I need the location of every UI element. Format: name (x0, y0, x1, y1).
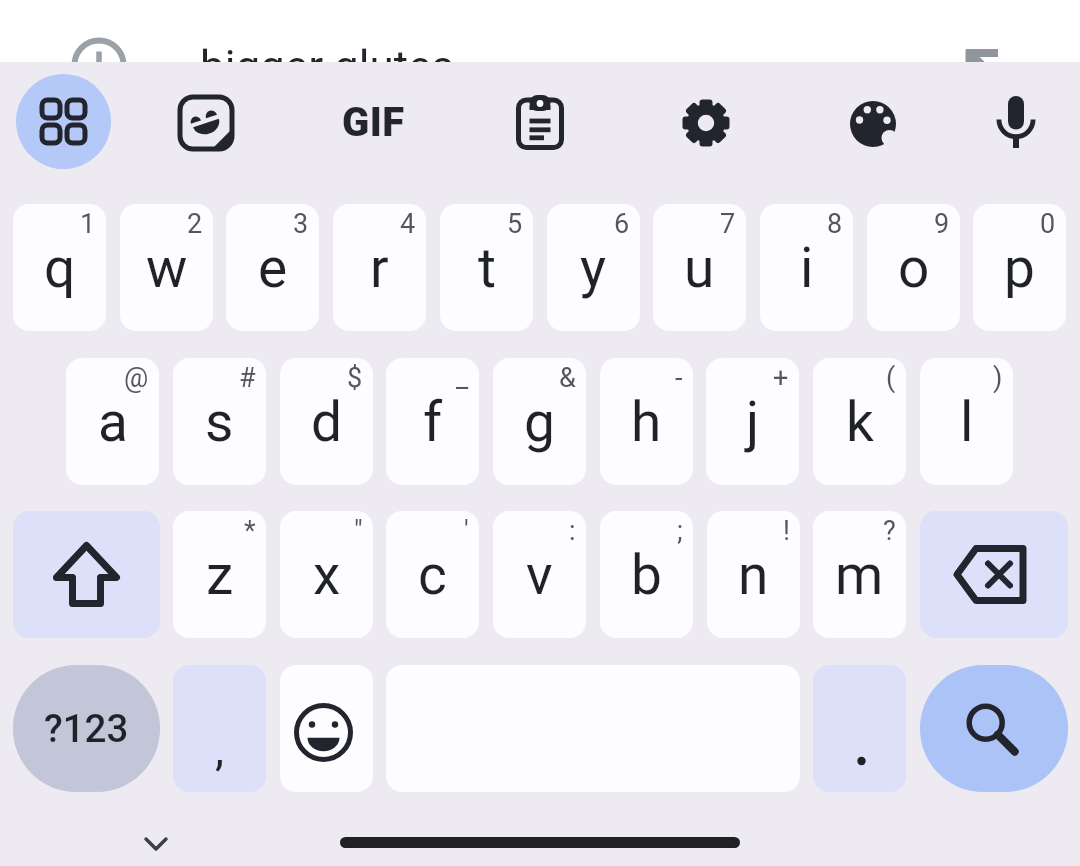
staticText: 1 (80, 208, 96, 240)
button[interactable]: bigger glutes (0, 0, 1080, 62)
button[interactable] (170, 87, 242, 159)
button[interactable]: e (226, 204, 319, 331)
button[interactable] (280, 665, 373, 792)
staticText: h (631, 390, 662, 454)
button[interactable] (813, 665, 906, 792)
button[interactable] (837, 88, 909, 160)
button[interactable]: n (707, 511, 800, 638)
staticText: y (580, 236, 607, 300)
staticText: @ (124, 362, 149, 394)
staticText: i (800, 236, 814, 300)
staticText: o (898, 236, 930, 300)
button[interactable]: t (440, 204, 533, 331)
button[interactable]: m (813, 511, 906, 638)
button[interactable]: v (493, 511, 586, 638)
button[interactable]: GIF (337, 86, 409, 158)
staticText: : (569, 515, 576, 547)
staticText: 6 (614, 208, 630, 240)
button[interactable]: ?123 (13, 665, 160, 792)
staticText: ( (886, 362, 896, 394)
staticText: m (835, 543, 884, 607)
staticText: 3 (293, 208, 309, 240)
staticText: * (244, 515, 256, 547)
staticText: _ (456, 362, 469, 394)
button[interactable]: w (120, 204, 213, 331)
button[interactable]: q (13, 204, 106, 331)
staticText: p (1004, 236, 1035, 300)
staticText: r (370, 236, 389, 300)
button[interactable]: y (547, 204, 640, 331)
button[interactable] (504, 88, 576, 160)
staticText: b (631, 543, 662, 607)
staticText: w (146, 236, 188, 300)
button[interactable] (980, 86, 1052, 158)
staticText: + (773, 362, 789, 394)
staticText: 5 (507, 208, 523, 240)
staticText: t (478, 236, 496, 300)
staticText: q (44, 236, 76, 300)
button[interactable]: c (386, 511, 479, 638)
staticText: GIF (342, 99, 405, 146)
staticText: 9 (934, 208, 950, 240)
staticText: e (258, 236, 288, 300)
staticText: x (313, 543, 341, 607)
button[interactable]: i (760, 204, 853, 331)
button[interactable]: s (173, 358, 266, 485)
staticText: l (960, 390, 974, 454)
staticText: bigger glutes (200, 41, 455, 62)
staticText: " (354, 515, 363, 547)
staticText: f (423, 390, 443, 454)
staticText: g (524, 390, 555, 454)
staticText: ! (783, 515, 790, 547)
button[interactable] (16, 74, 111, 169)
staticText: 2 (187, 208, 203, 240)
staticText: v (526, 543, 553, 607)
staticText: 0 (1040, 208, 1056, 240)
button[interactable] (920, 511, 1068, 638)
staticText: ; (677, 515, 683, 547)
staticText: s (205, 390, 234, 454)
button[interactable]: f (386, 358, 479, 485)
button[interactable]: u (653, 204, 746, 331)
button[interactable]: h (600, 358, 693, 485)
staticText: 4 (400, 208, 416, 240)
button[interactable]: r (333, 204, 426, 331)
button[interactable]: d (280, 358, 373, 485)
button[interactable]: z (173, 511, 266, 638)
button[interactable]: , (173, 665, 266, 792)
staticText: , (215, 722, 225, 776)
staticText: 7 (720, 208, 736, 240)
staticText: ' (464, 515, 469, 547)
staticText: ? (883, 515, 896, 547)
staticText: c (418, 543, 447, 607)
button[interactable]: j (706, 358, 799, 485)
staticText: ?123 (44, 706, 129, 751)
staticText: z (206, 543, 234, 607)
staticText: a (98, 390, 128, 454)
button[interactable] (13, 511, 160, 638)
button[interactable]: k (813, 358, 906, 485)
staticText: j (746, 390, 760, 454)
staticText: # (239, 362, 256, 394)
staticText: $ (347, 362, 363, 394)
staticText: - (675, 362, 683, 394)
button[interactable]: l (920, 358, 1013, 485)
staticText: u (684, 236, 715, 300)
staticText: & (559, 362, 576, 394)
button[interactable]: p (973, 204, 1066, 331)
button[interactable]: x (280, 511, 373, 638)
staticText: 8 (827, 208, 843, 240)
button[interactable] (145, 836, 169, 854)
staticText: ) (993, 362, 1003, 394)
staticText: d (311, 390, 343, 454)
button[interactable]: g (493, 358, 586, 485)
button[interactable] (920, 665, 1068, 792)
staticText: n (738, 543, 769, 607)
button[interactable]: o (867, 204, 960, 331)
staticText: k (846, 390, 874, 454)
button[interactable] (670, 87, 742, 159)
button[interactable]: a (66, 358, 159, 485)
button[interactable]: b (600, 511, 693, 638)
